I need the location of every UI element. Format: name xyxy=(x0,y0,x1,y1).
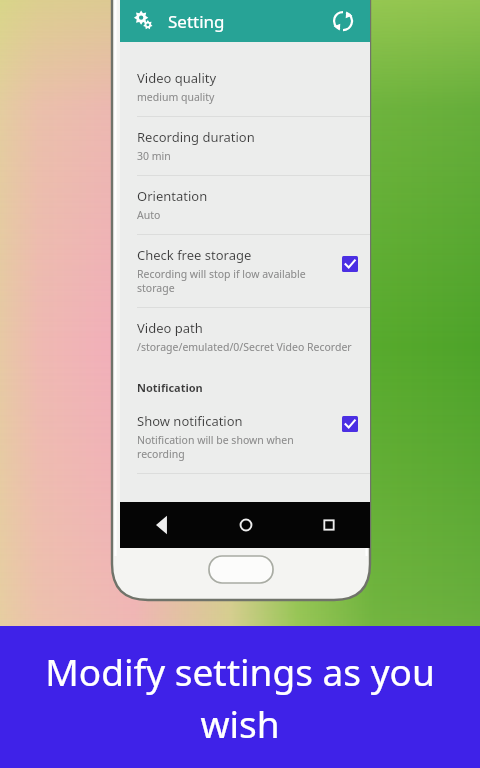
button[interactable]: Recent apps xyxy=(287,502,370,548)
staticText: Modify settings as you xyxy=(0,646,480,696)
button[interactable]: Show notification xyxy=(342,416,358,432)
staticText: Video quality xyxy=(137,69,217,87)
button[interactable]: Home xyxy=(204,502,287,548)
other: Settings xyxy=(132,9,156,33)
staticText: Orientation xyxy=(137,187,208,205)
staticText: Video path xyxy=(137,319,203,337)
button[interactable]: Orientation xyxy=(120,176,370,234)
staticText: /storage/emulated/0/Secret Video Recorde… xyxy=(137,340,352,354)
staticText: wish xyxy=(0,698,480,748)
button[interactable]: Recording duration xyxy=(120,117,370,175)
button[interactable]: Video quality xyxy=(120,58,370,116)
staticText: 30 min xyxy=(137,149,171,163)
staticText: Check free storage xyxy=(137,246,252,264)
staticText: Setting xyxy=(168,10,225,33)
button[interactable]: Back xyxy=(120,502,204,548)
staticText: Notification xyxy=(137,380,203,395)
button[interactable]: Check free storage xyxy=(120,235,370,307)
staticText: medium quality xyxy=(137,90,215,104)
staticText: Show notification xyxy=(137,412,243,430)
button[interactable]: Settings xyxy=(120,0,370,42)
staticText: Recording duration xyxy=(137,128,255,146)
button[interactable]: Check free storage xyxy=(342,256,358,272)
button[interactable]: Show notification xyxy=(120,401,370,473)
staticText: Recording will stop if low available sto… xyxy=(137,267,332,295)
button[interactable]: Reset xyxy=(328,6,358,36)
staticText: Auto xyxy=(137,208,161,222)
staticText: Notification will be shown when recordin… xyxy=(137,433,332,461)
button[interactable]: Video path xyxy=(120,308,370,366)
